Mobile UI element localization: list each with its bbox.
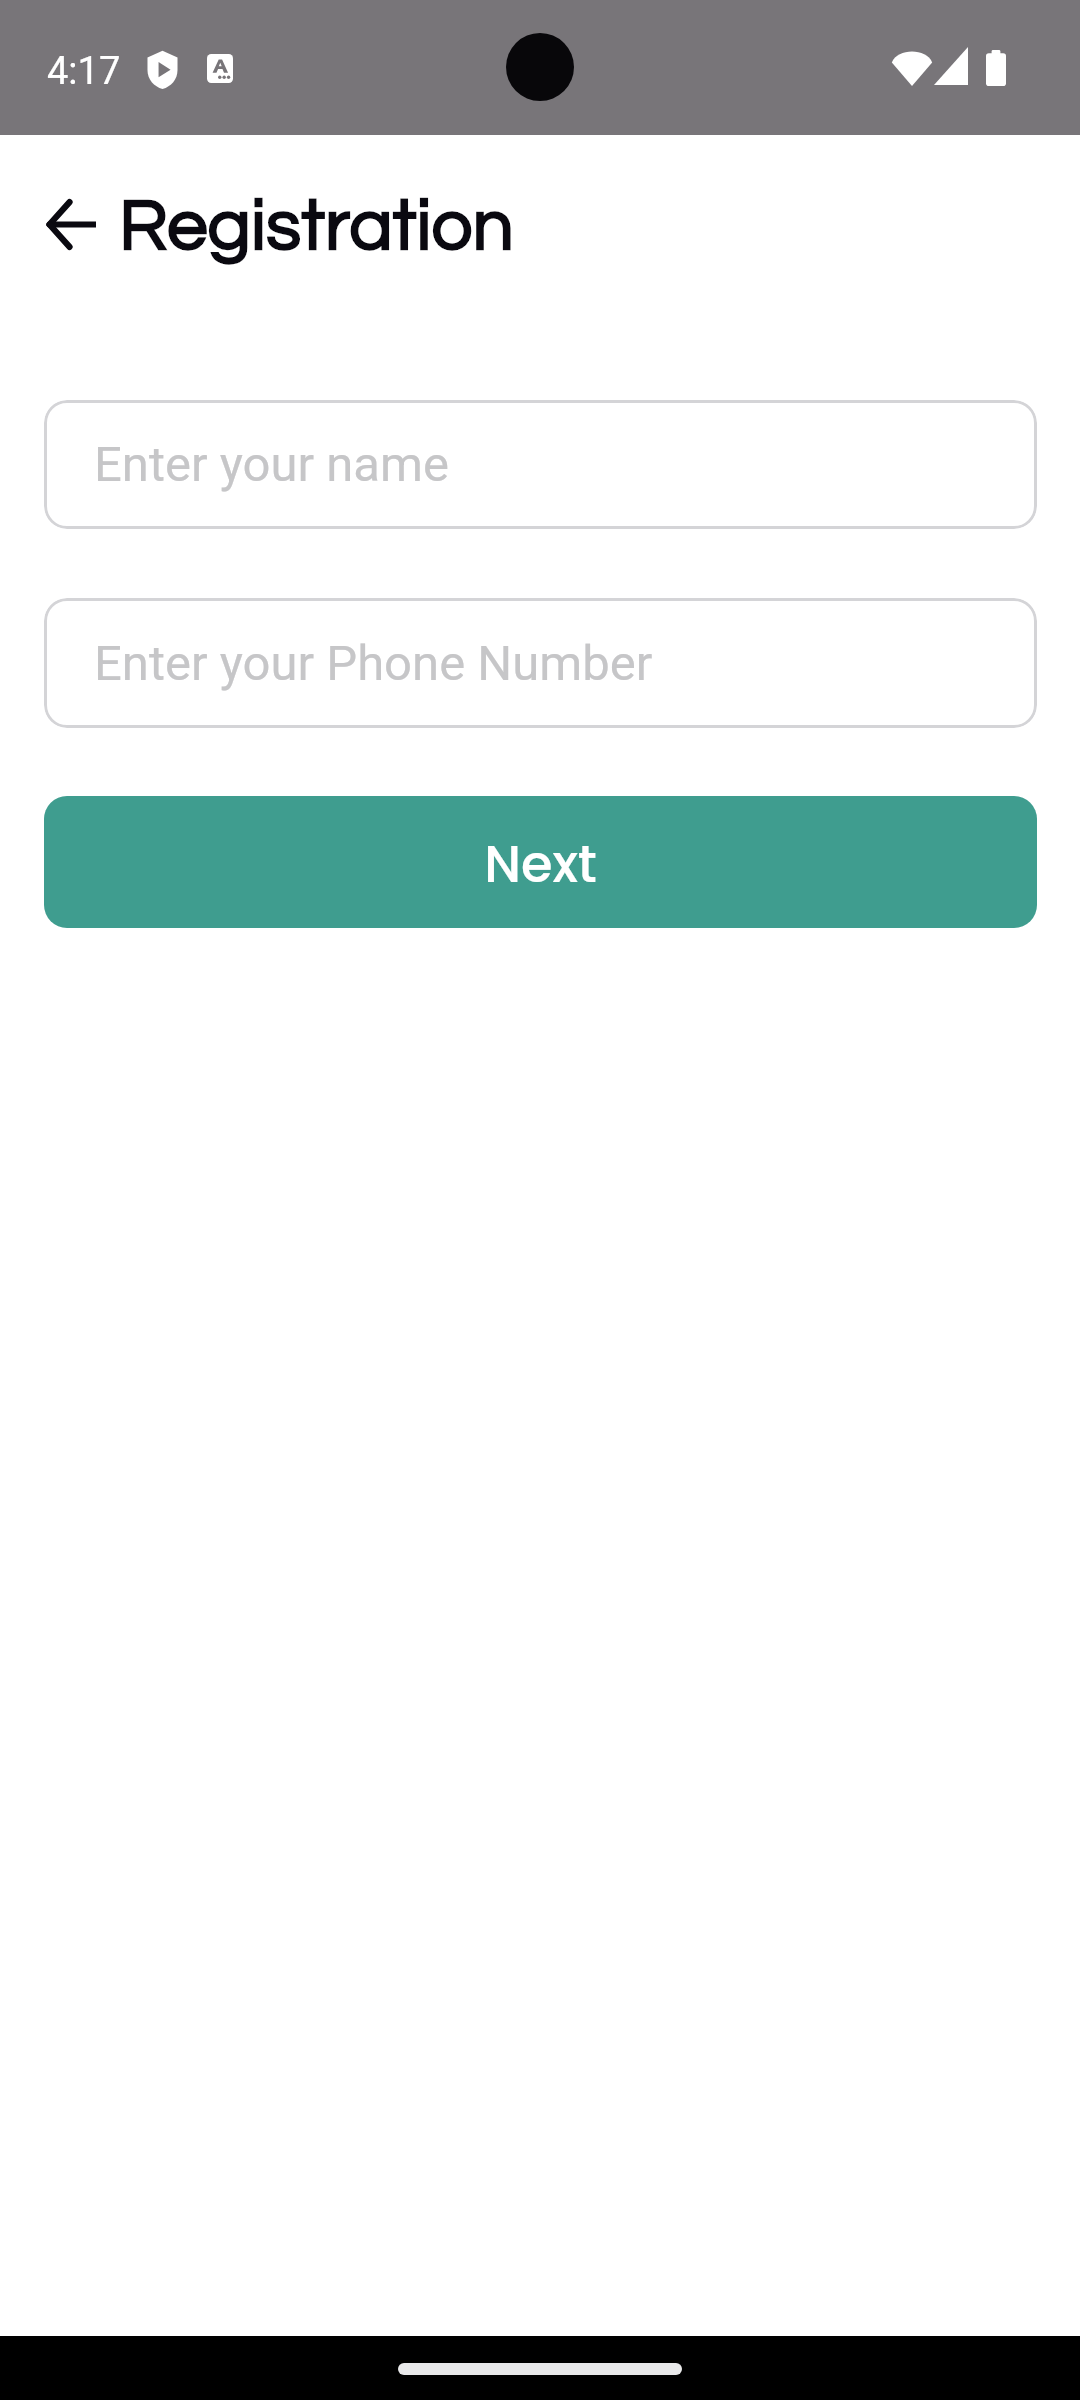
button[interactable]: Enter your name (44, 400, 1037, 529)
button[interactable]: Back (26, 180, 116, 268)
staticText: 4:17 (47, 49, 121, 94)
button[interactable]: Enter your Phone Number (44, 598, 1037, 728)
staticText: Enter your name (94, 436, 449, 493)
staticText: Next (484, 828, 597, 899)
button[interactable]: Next (44, 796, 1037, 928)
staticText: Enter your Phone Number (94, 635, 653, 692)
staticText: Registration (119, 189, 514, 264)
